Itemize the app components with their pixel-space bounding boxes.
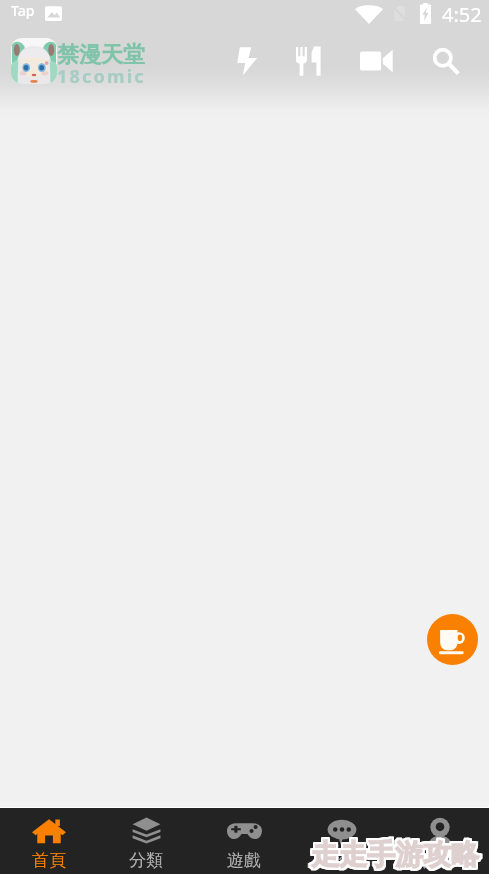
staticText: 禁漫天堂 [57, 41, 145, 69]
staticText: 走走手游攻略 [311, 838, 479, 873]
staticText: 走走手游攻略 [310, 838, 478, 873]
staticText: 走走手游攻略 [310, 835, 478, 870]
staticText: 走走手游攻略 [313, 836, 481, 871]
button[interactable]: 討論區 [293, 808, 391, 874]
staticText: 18comic [57, 64, 146, 89]
staticText: 4:52 [442, 1, 482, 28]
staticText: 走走手游攻略 [311, 839, 479, 874]
staticText: 走走手游攻略 [309, 838, 477, 873]
button[interactable]: 遊戲 [195, 808, 293, 874]
button[interactable]: 首頁 [0, 808, 97, 874]
button[interactable]: Video [352, 37, 400, 85]
staticText: 走走手游攻略 [313, 839, 481, 874]
button[interactable]: 分類 [97, 808, 195, 874]
button[interactable]: 個人中心 [391, 808, 489, 874]
button[interactable]: Restaurant [284, 37, 332, 85]
staticText: 走走手游攻略 [309, 836, 477, 871]
staticText: 走走手游攻略 [311, 837, 479, 872]
button[interactable]: Search [421, 36, 469, 84]
staticText: 個人中心 [406, 850, 474, 871]
button[interactable]: 18comic logo [11, 38, 57, 84]
staticText: 走走手游攻略 [309, 837, 477, 872]
staticText: 走走手游攻略 [312, 838, 480, 873]
staticText: Tap [11, 1, 35, 20]
staticText: 首頁 [32, 850, 66, 871]
staticText: 走走手游攻略 [310, 836, 478, 871]
button[interactable]: Coffee [427, 614, 478, 665]
staticText: 走走手游攻略 [311, 835, 479, 870]
staticText: 走走手游攻略 [312, 836, 480, 871]
staticText: 討論區 [317, 850, 368, 871]
staticText: 走走手游攻略 [309, 839, 477, 874]
staticText: 走走手游攻略 [313, 837, 481, 872]
staticText: 走走手游攻略 [312, 837, 480, 872]
staticText: 走走手游攻略 [310, 837, 478, 872]
staticText: 分類 [129, 850, 163, 871]
staticText: 走走手游攻略 [311, 836, 479, 871]
staticText: 遊戲 [227, 850, 261, 871]
staticText: 走走手游攻略 [313, 838, 481, 873]
staticText: 走走手游攻略 [313, 835, 481, 870]
staticText: 走走手游攻略 [310, 839, 478, 874]
staticText: 走走手游攻略 [312, 839, 480, 874]
staticText: 走走手游攻略 [312, 835, 480, 870]
staticText: 走走手游攻略 [309, 835, 477, 870]
button[interactable]: Flash [223, 37, 271, 85]
